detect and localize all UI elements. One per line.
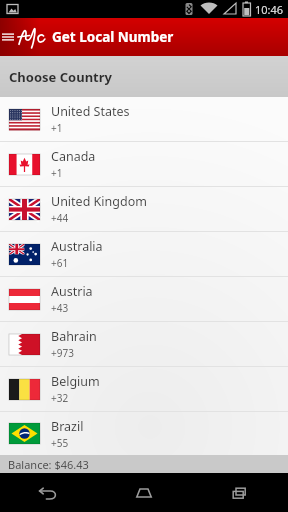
staticText: +55 bbox=[51, 436, 69, 450]
button[interactable]: Open navigation menu bbox=[0, 18, 16, 56]
staticText: +61 bbox=[51, 256, 69, 270]
staticText: +32 bbox=[51, 391, 69, 405]
staticText: United States bbox=[51, 103, 130, 120]
staticText: Get Local Number bbox=[52, 28, 174, 46]
staticText: Austria bbox=[51, 283, 93, 300]
staticText: +973 bbox=[51, 346, 74, 360]
button[interactable]: Recent apps bbox=[192, 473, 288, 512]
staticText: +1 bbox=[51, 166, 63, 180]
button[interactable]: Bahrain bbox=[0, 322, 288, 367]
button[interactable]: Austria bbox=[0, 277, 288, 322]
button[interactable]: Belgium bbox=[0, 367, 288, 412]
staticText: +43 bbox=[51, 301, 69, 315]
staticText: Balance: $46.43 bbox=[8, 457, 89, 472]
button[interactable]: Brazil bbox=[0, 412, 288, 455]
button[interactable]: Back bbox=[0, 473, 96, 512]
staticText: United Kingdom bbox=[51, 193, 147, 210]
button[interactable]: Australia bbox=[0, 232, 288, 277]
staticText: Bahrain bbox=[51, 328, 97, 345]
button[interactable]: Canada bbox=[0, 142, 288, 187]
staticText: 10:46 bbox=[255, 2, 284, 17]
staticText: +44 bbox=[51, 211, 69, 225]
button[interactable]: United States bbox=[0, 97, 288, 142]
button[interactable]: United Kingdom bbox=[0, 187, 288, 232]
button[interactable]: Home bbox=[96, 473, 192, 512]
staticText: Choose Country bbox=[9, 68, 112, 86]
staticText: Brazil bbox=[51, 418, 84, 435]
staticText: Australia bbox=[51, 238, 103, 255]
staticText: Belgium bbox=[51, 373, 100, 390]
staticText: Canada bbox=[51, 148, 96, 165]
staticText: +1 bbox=[51, 121, 63, 135]
